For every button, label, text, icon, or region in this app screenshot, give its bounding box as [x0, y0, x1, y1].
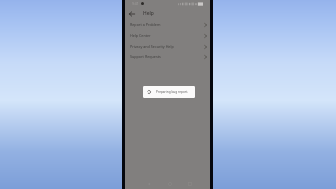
button[interactable]: Help Center	[125, 30, 210, 41]
button[interactable]: Recents	[187, 181, 192, 186]
staticText: Help	[143, 10, 154, 17]
button[interactable]: Report a Problem	[125, 19, 210, 30]
staticText: Report a Problem	[130, 22, 161, 27]
staticText: Preparing bug report.	[156, 90, 189, 94]
button[interactable]: Privacy and Security Help	[125, 41, 210, 52]
button[interactable]: Support Requests	[125, 51, 210, 62]
staticText: Privacy and Security Help	[130, 44, 174, 49]
staticText: Support Requests	[130, 54, 161, 59]
button[interactable]: Back	[126, 8, 137, 19]
staticText: Help Center	[130, 33, 151, 38]
staticText: 9:41	[132, 1, 139, 6]
button[interactable]: Preparing bug report.	[143, 86, 195, 98]
